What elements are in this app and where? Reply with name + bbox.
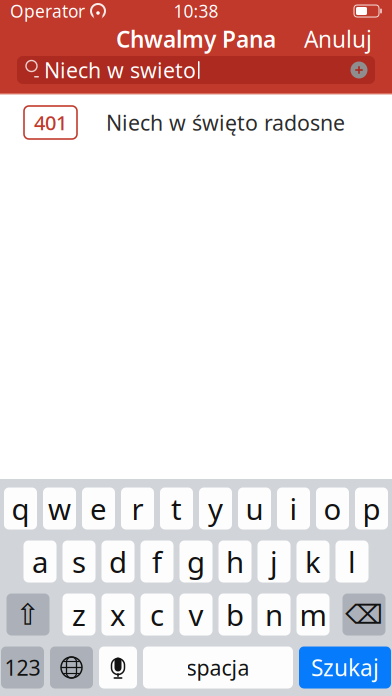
staticText: s [72,542,86,581]
button[interactable]: b [218,593,251,635]
staticText: Chwalmy Pana [116,24,276,54]
button[interactable]: s [62,540,95,582]
button[interactable]: t [160,487,193,529]
button[interactable]: y [199,487,232,529]
button[interactable]: Backspace [342,593,385,635]
button[interactable]: j [257,540,290,582]
button[interactable]: r [121,487,154,529]
button[interactable]: m [296,593,329,635]
staticText: f [152,542,162,581]
staticText: u [245,489,263,528]
button[interactable]: Niech w swieto [17,56,375,84]
button[interactable]: c [140,593,173,635]
button[interactable]: h [218,540,251,582]
staticText: ⇧ [15,598,40,631]
button[interactable]: a [23,540,56,582]
button[interactable]: Anuluj [296,17,380,61]
button[interactable]: w [43,487,76,529]
staticText: 10:38 [173,0,218,22]
staticText: g [187,542,205,581]
staticText: m [299,595,326,634]
button[interactable]: v [179,593,212,635]
button[interactable]: f [140,540,173,582]
button[interactable]: d [101,540,134,582]
button[interactable]: Shift [6,593,49,635]
button[interactable]: p [355,487,388,529]
staticText: z [72,595,86,634]
staticText: b [226,595,244,634]
button[interactable]: x [101,593,134,635]
staticText: y [208,489,223,528]
staticText: x [110,595,126,634]
button[interactable]: 123 [1,646,44,688]
button[interactable]: u [238,487,271,529]
button[interactable]: 401 [0,94,392,150]
staticText: h [226,542,244,581]
button[interactable]: k [296,540,329,582]
staticText: j [270,542,278,581]
button[interactable]: z [62,593,95,635]
staticText: p [362,489,380,528]
button[interactable]: Dictate [99,646,137,688]
staticText: e [90,489,107,528]
staticText: n [265,595,283,634]
staticText: r [131,489,143,528]
button[interactable]: q [4,487,37,529]
staticText: a [32,542,48,581]
staticText: c [150,595,164,634]
staticText: d [109,542,127,581]
staticText: v [188,595,203,634]
button[interactable]: l [335,540,368,582]
staticText: Niech w święto radosne [106,108,345,137]
button[interactable]: g [179,540,212,582]
staticText: 123 [4,653,40,682]
button[interactable]: o [316,487,349,529]
button[interactable]: n [257,593,290,635]
staticText: spacja [186,653,249,682]
button[interactable]: Szukaj [299,646,391,688]
staticText: Anuluj [304,24,372,54]
button[interactable]: e [82,487,115,529]
staticText: q [11,489,29,528]
staticText: Niech w swieto [44,56,196,84]
staticText: t [171,489,182,528]
button[interactable]: i [277,487,310,529]
staticText: k [305,542,321,581]
staticText: w [48,489,71,528]
staticText: l [348,542,356,581]
staticText: Szukaj [311,652,379,682]
staticText: o [323,489,341,528]
staticText: 401 [34,109,67,136]
staticText: Operator [10,0,85,22]
button[interactable]: spacja [143,646,293,688]
staticText: i [289,489,297,528]
staticText: ⌫ [345,599,383,630]
button[interactable]: Next keyboard [50,646,93,688]
